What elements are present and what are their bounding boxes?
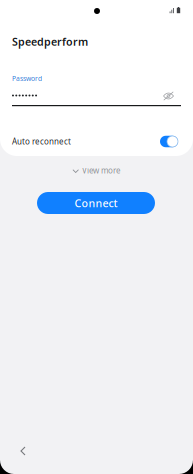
button[interactable]: Connect [37, 192, 155, 214]
button[interactable]: Back [10, 440, 36, 462]
button[interactable]: View more [57, 163, 137, 177]
staticText: Auto reconnect [12, 136, 71, 147]
button[interactable]: Auto reconnect [12, 131, 178, 151]
staticText: Connect [74, 196, 117, 210]
staticText: View more [82, 165, 121, 176]
staticText: Speedperform [12, 34, 88, 49]
staticText: Password [12, 74, 42, 83]
